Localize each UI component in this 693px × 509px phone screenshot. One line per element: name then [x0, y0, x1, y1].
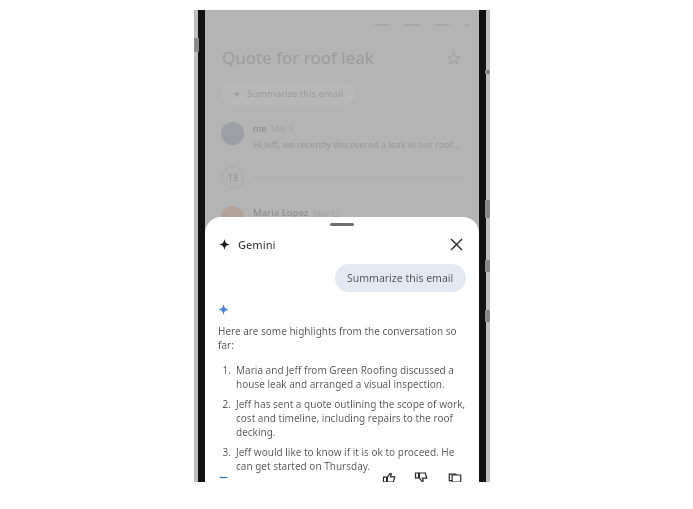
staticText: 1. [218, 363, 231, 377]
staticText: me [253, 122, 267, 134]
button[interactable]: Summarize this email [335, 264, 466, 292]
button[interactable]: Copy [444, 473, 466, 482]
staticText: May 9 [271, 123, 294, 134]
button[interactable]: Sources [216, 473, 272, 482]
staticText: Hi Jeff, we recently discovered a leak i… [253, 138, 460, 150]
button[interactable]: Bad response [410, 473, 432, 482]
staticText: Quote for roof leak [222, 46, 374, 69]
button[interactable]: Star [443, 48, 463, 68]
button[interactable]: Close [445, 233, 467, 255]
staticText: Maria Lopez [253, 206, 309, 219]
staticText: Gemini [238, 237, 276, 252]
staticText: Jeff would like to know if it is ok to p… [236, 445, 468, 473]
button[interactable]: Summarize this email [222, 82, 355, 105]
staticText: Here are some highlights from the conver… [218, 324, 468, 352]
staticText: 2. [218, 397, 231, 411]
staticText: Maria and Jeff from Green Roofing discus… [236, 363, 468, 391]
staticText: 13 [228, 172, 238, 184]
button[interactable]: Good response [378, 473, 400, 482]
button[interactable]: 13 messages [221, 166, 244, 189]
staticText: Summarize this email [247, 87, 344, 100]
staticText: Jeff has sent a quote outlining the scop… [236, 397, 468, 439]
staticText: 3. [218, 445, 231, 459]
staticText: May 12 [313, 208, 341, 219]
staticText: Summarize this email [347, 271, 454, 285]
